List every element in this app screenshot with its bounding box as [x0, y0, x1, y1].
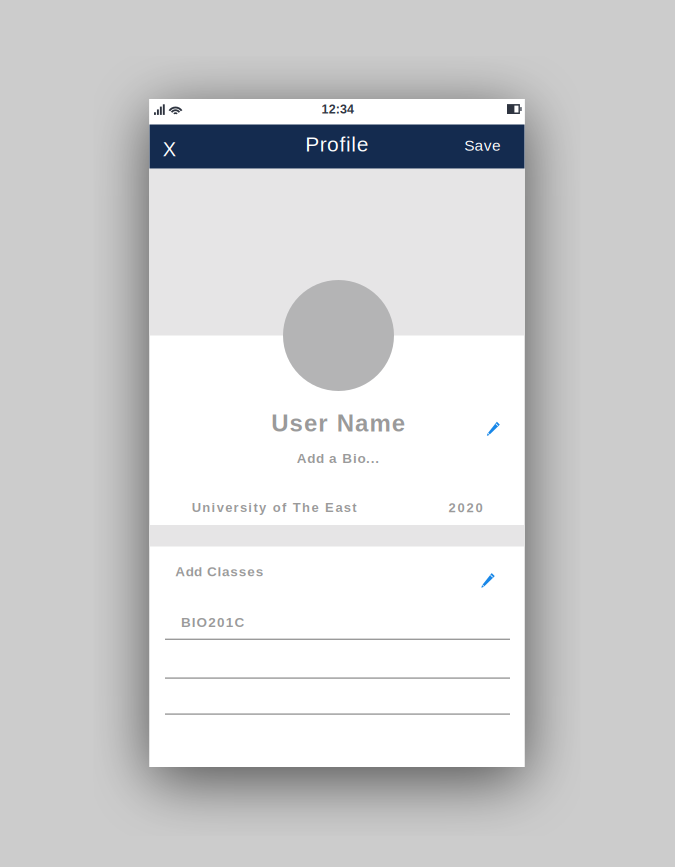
staticText: X: [163, 138, 176, 160]
button[interactable]: Profile: [277, 129, 397, 159]
staticText: BIO201C: [181, 615, 244, 630]
staticText: Add a Bio...: [297, 451, 379, 466]
staticText: Save: [464, 137, 501, 154]
staticText: Profile: [305, 132, 369, 156]
staticText: Add Classes: [175, 564, 264, 579]
button[interactable]: Save: [451, 128, 513, 162]
button[interactable]: Edit classes: [475, 567, 501, 593]
button[interactable]: Edit name: [480, 415, 506, 441]
staticText: 12:34: [321, 102, 354, 116]
staticText: University of The East: [192, 500, 356, 515]
staticText: User Name: [271, 410, 405, 436]
button[interactable]: Close: [152, 132, 186, 166]
staticText: 2020: [449, 500, 483, 515]
